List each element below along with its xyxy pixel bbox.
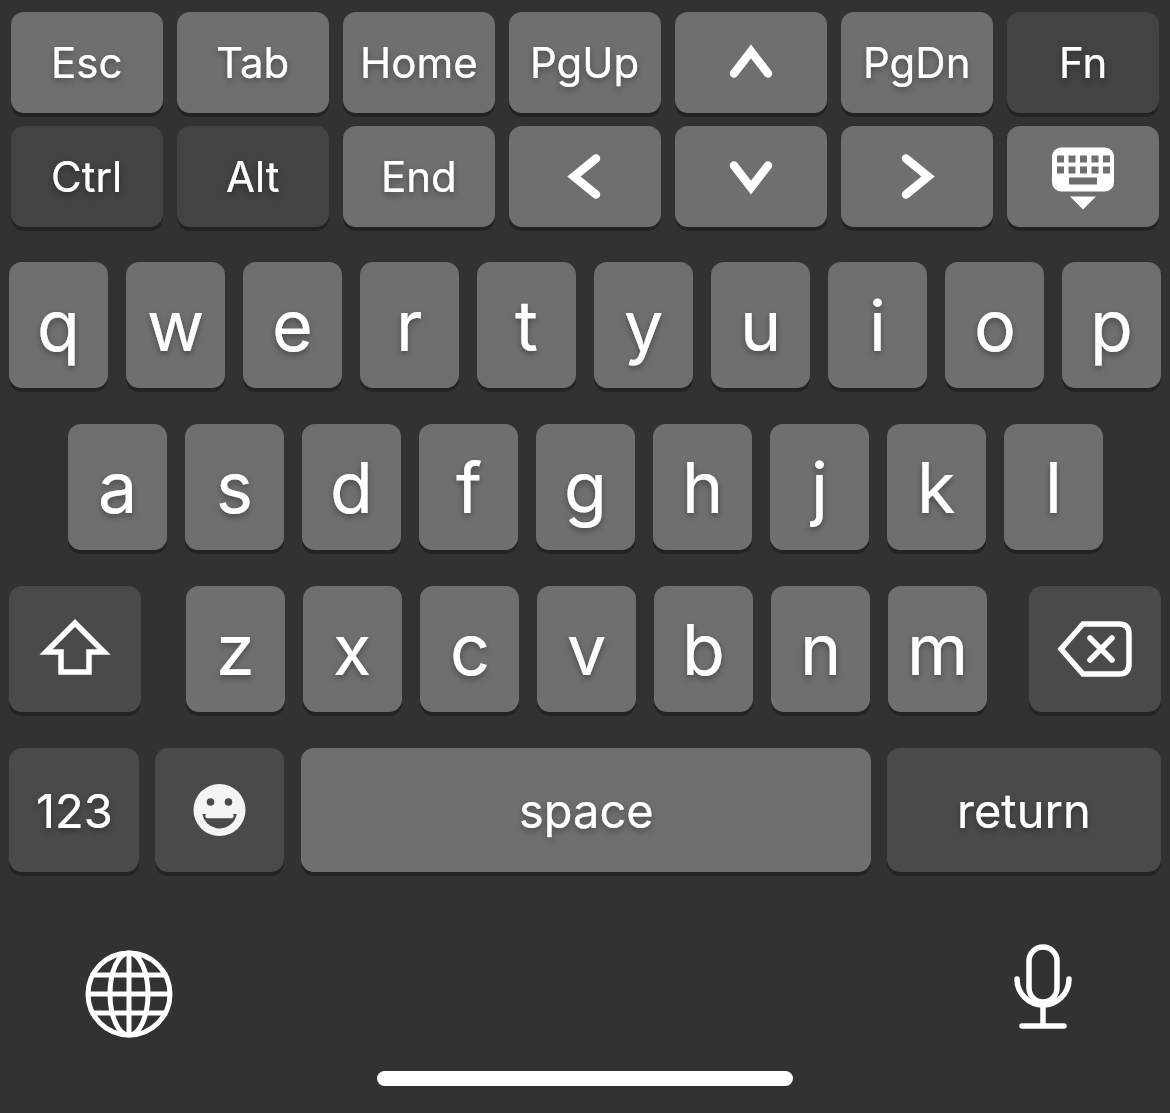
- staticText: PgDn: [863, 37, 971, 88]
- button[interactable]: [1029, 586, 1161, 712]
- staticText: z: [216, 607, 255, 692]
- staticText: d: [330, 445, 373, 530]
- button[interactable]: return: [887, 748, 1161, 872]
- button[interactable]: Tab: [177, 12, 329, 113]
- button[interactable]: PgDn: [841, 12, 993, 113]
- staticText: PgUp: [530, 37, 640, 88]
- button[interactable]: [155, 748, 284, 872]
- button[interactable]: g: [536, 424, 635, 550]
- staticText: g: [564, 445, 607, 530]
- button[interactable]: e: [243, 262, 342, 388]
- button[interactable]: [9, 586, 141, 712]
- button[interactable]: f: [419, 424, 518, 550]
- staticText: t: [515, 283, 538, 368]
- button[interactable]: d: [302, 424, 401, 550]
- staticText: i: [869, 283, 886, 368]
- staticText: return: [957, 782, 1091, 839]
- staticText: r: [396, 283, 423, 368]
- button[interactable]: Alt: [177, 126, 329, 227]
- button[interactable]: i: [828, 262, 927, 388]
- staticText: l: [1045, 445, 1062, 530]
- button[interactable]: n: [771, 586, 870, 712]
- button[interactable]: [1007, 126, 1159, 227]
- button[interactable]: j: [770, 424, 869, 550]
- button[interactable]: v: [537, 586, 636, 712]
- button[interactable]: c: [420, 586, 519, 712]
- staticText: 123: [36, 782, 113, 839]
- button[interactable]: PgUp: [509, 12, 661, 113]
- button[interactable]: k: [887, 424, 986, 550]
- staticText: f: [456, 445, 482, 530]
- button[interactable]: End: [343, 126, 495, 227]
- staticText: a: [98, 445, 138, 530]
- staticText: e: [272, 283, 313, 368]
- button[interactable]: Fn: [1007, 12, 1159, 113]
- staticText: s: [216, 445, 253, 530]
- button[interactable]: x: [303, 586, 402, 712]
- button[interactable]: s: [185, 424, 284, 550]
- staticText: Fn: [1059, 37, 1108, 88]
- button[interactable]: y: [594, 262, 693, 388]
- button[interactable]: p: [1062, 262, 1161, 388]
- staticText: End: [381, 151, 457, 202]
- button[interactable]: [993, 941, 1093, 1041]
- staticText: j: [811, 445, 828, 530]
- staticText: p: [1090, 283, 1133, 368]
- button[interactable]: l: [1004, 424, 1103, 550]
- button[interactable]: [675, 12, 827, 113]
- staticText: n: [800, 607, 842, 692]
- button[interactable]: b: [654, 586, 753, 712]
- staticText: h: [682, 445, 724, 530]
- staticText: q: [37, 283, 80, 368]
- button[interactable]: q: [9, 262, 108, 388]
- button[interactable]: h: [653, 424, 752, 550]
- button[interactable]: Ctrl: [11, 126, 163, 227]
- staticText: Home: [360, 37, 478, 88]
- button[interactable]: m: [888, 586, 987, 712]
- button[interactable]: space: [301, 748, 871, 872]
- button[interactable]: [79, 944, 179, 1044]
- button[interactable]: z: [186, 586, 285, 712]
- button[interactable]: t: [477, 262, 576, 388]
- staticText: k: [917, 445, 956, 530]
- button[interactable]: o: [945, 262, 1044, 388]
- staticText: u: [740, 283, 782, 368]
- button[interactable]: [509, 126, 661, 227]
- staticText: Esc: [51, 37, 123, 88]
- staticText: Alt: [226, 151, 280, 202]
- button[interactable]: 123: [9, 748, 139, 872]
- staticText: b: [682, 607, 725, 692]
- staticText: v: [567, 607, 607, 692]
- button[interactable]: a: [68, 424, 167, 550]
- button[interactable]: Home: [343, 12, 495, 113]
- staticText: Ctrl: [51, 151, 123, 202]
- button[interactable]: r: [360, 262, 459, 388]
- button[interactable]: [675, 126, 827, 227]
- staticText: o: [974, 283, 1016, 368]
- staticText: m: [907, 607, 969, 692]
- button[interactable]: u: [711, 262, 810, 388]
- staticText: w: [147, 283, 205, 368]
- staticText: x: [333, 607, 372, 692]
- button[interactable]: Esc: [11, 12, 163, 113]
- button[interactable]: [841, 126, 993, 227]
- button[interactable]: w: [126, 262, 225, 388]
- staticText: space: [519, 782, 654, 839]
- staticText: Tab: [216, 37, 290, 88]
- staticText: c: [450, 607, 490, 692]
- staticText: y: [624, 283, 664, 368]
